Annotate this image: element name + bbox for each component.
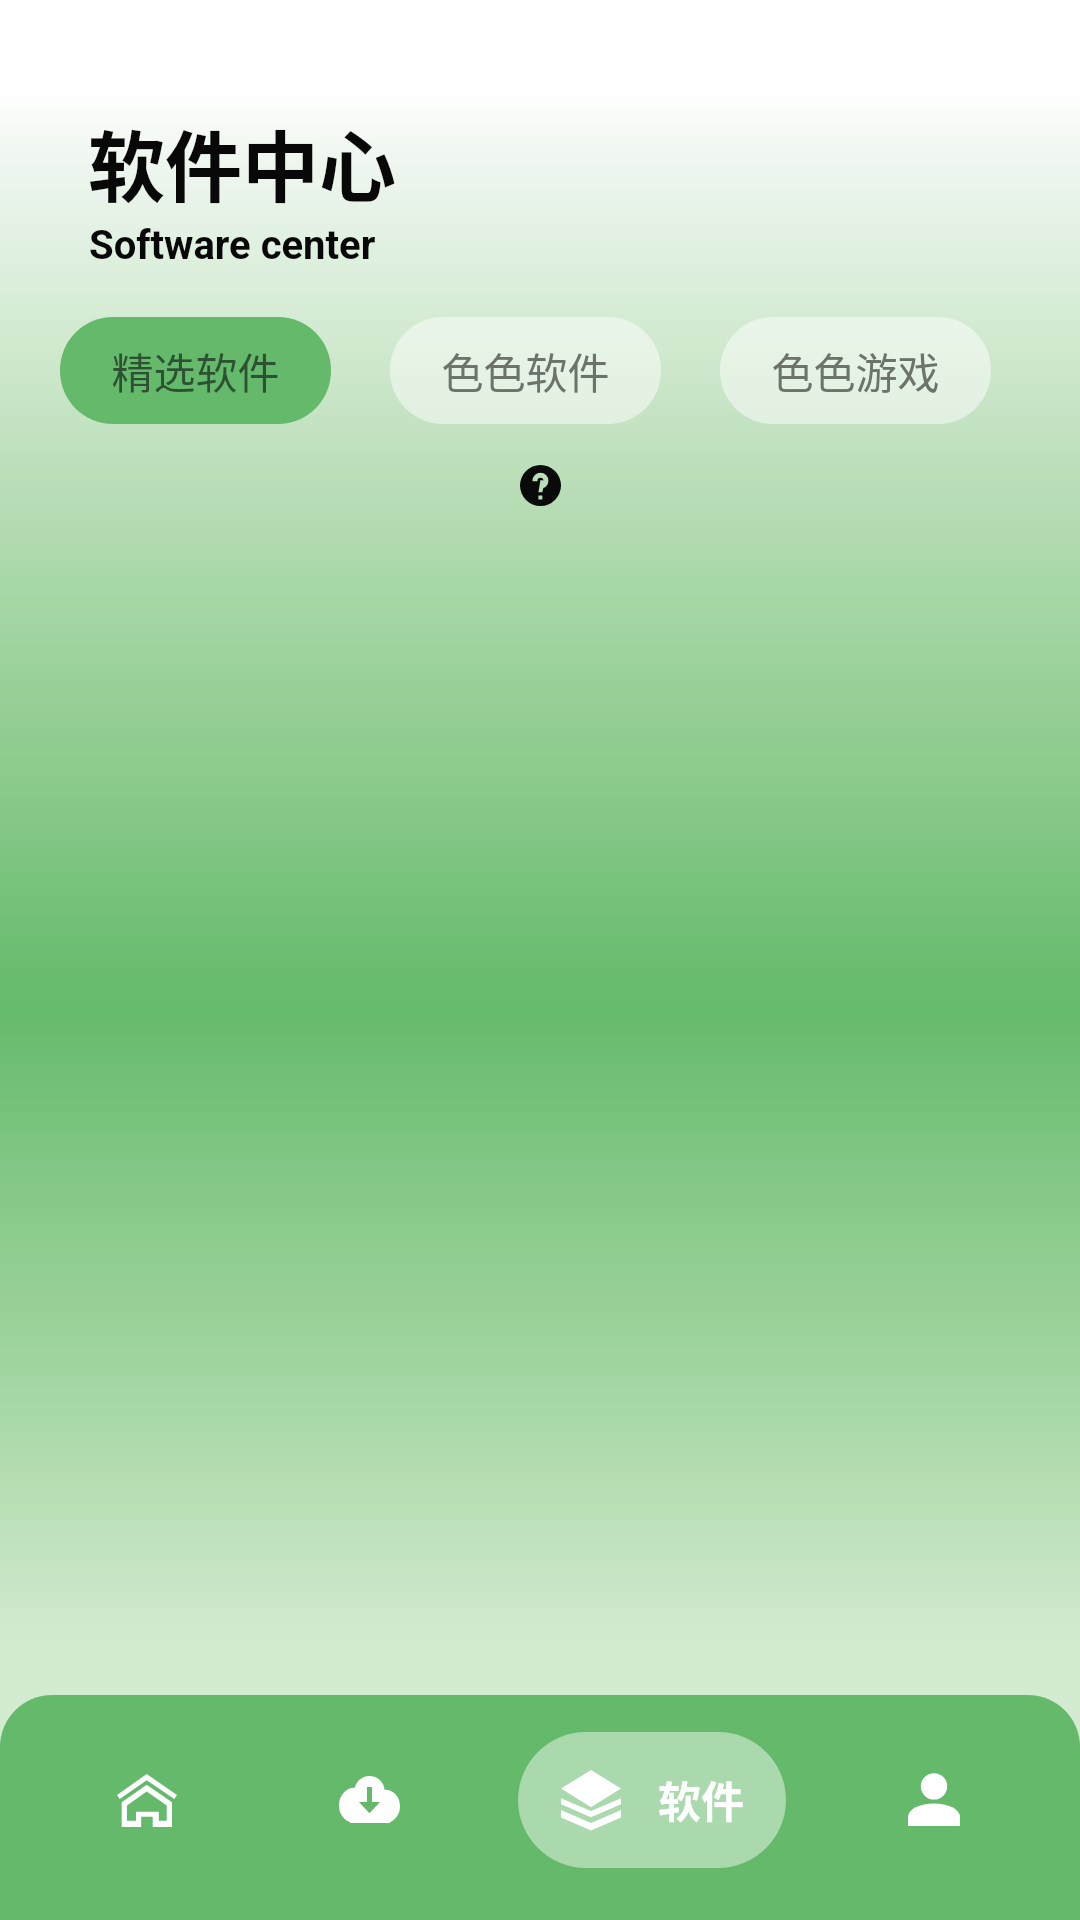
- button[interactable]: Profile: [864, 1734, 1004, 1864]
- staticText: 色色游戏: [771, 340, 940, 401]
- staticText: 色色软件: [441, 340, 610, 401]
- button[interactable]: Home: [77, 1735, 217, 1865]
- staticText: 软件中心: [88, 107, 396, 218]
- button[interactable]: 软件: [518, 1732, 786, 1868]
- other: Help: [520, 465, 561, 506]
- staticText: 软件: [658, 1768, 744, 1830]
- staticText: Software center: [89, 222, 376, 269]
- button[interactable]: 色色游戏: [720, 317, 991, 424]
- button[interactable]: 色色软件: [390, 317, 661, 424]
- staticText: 精选软件: [111, 340, 280, 401]
- button[interactable]: Downloads: [299, 1734, 439, 1864]
- button[interactable]: 精选软件: [60, 317, 331, 424]
